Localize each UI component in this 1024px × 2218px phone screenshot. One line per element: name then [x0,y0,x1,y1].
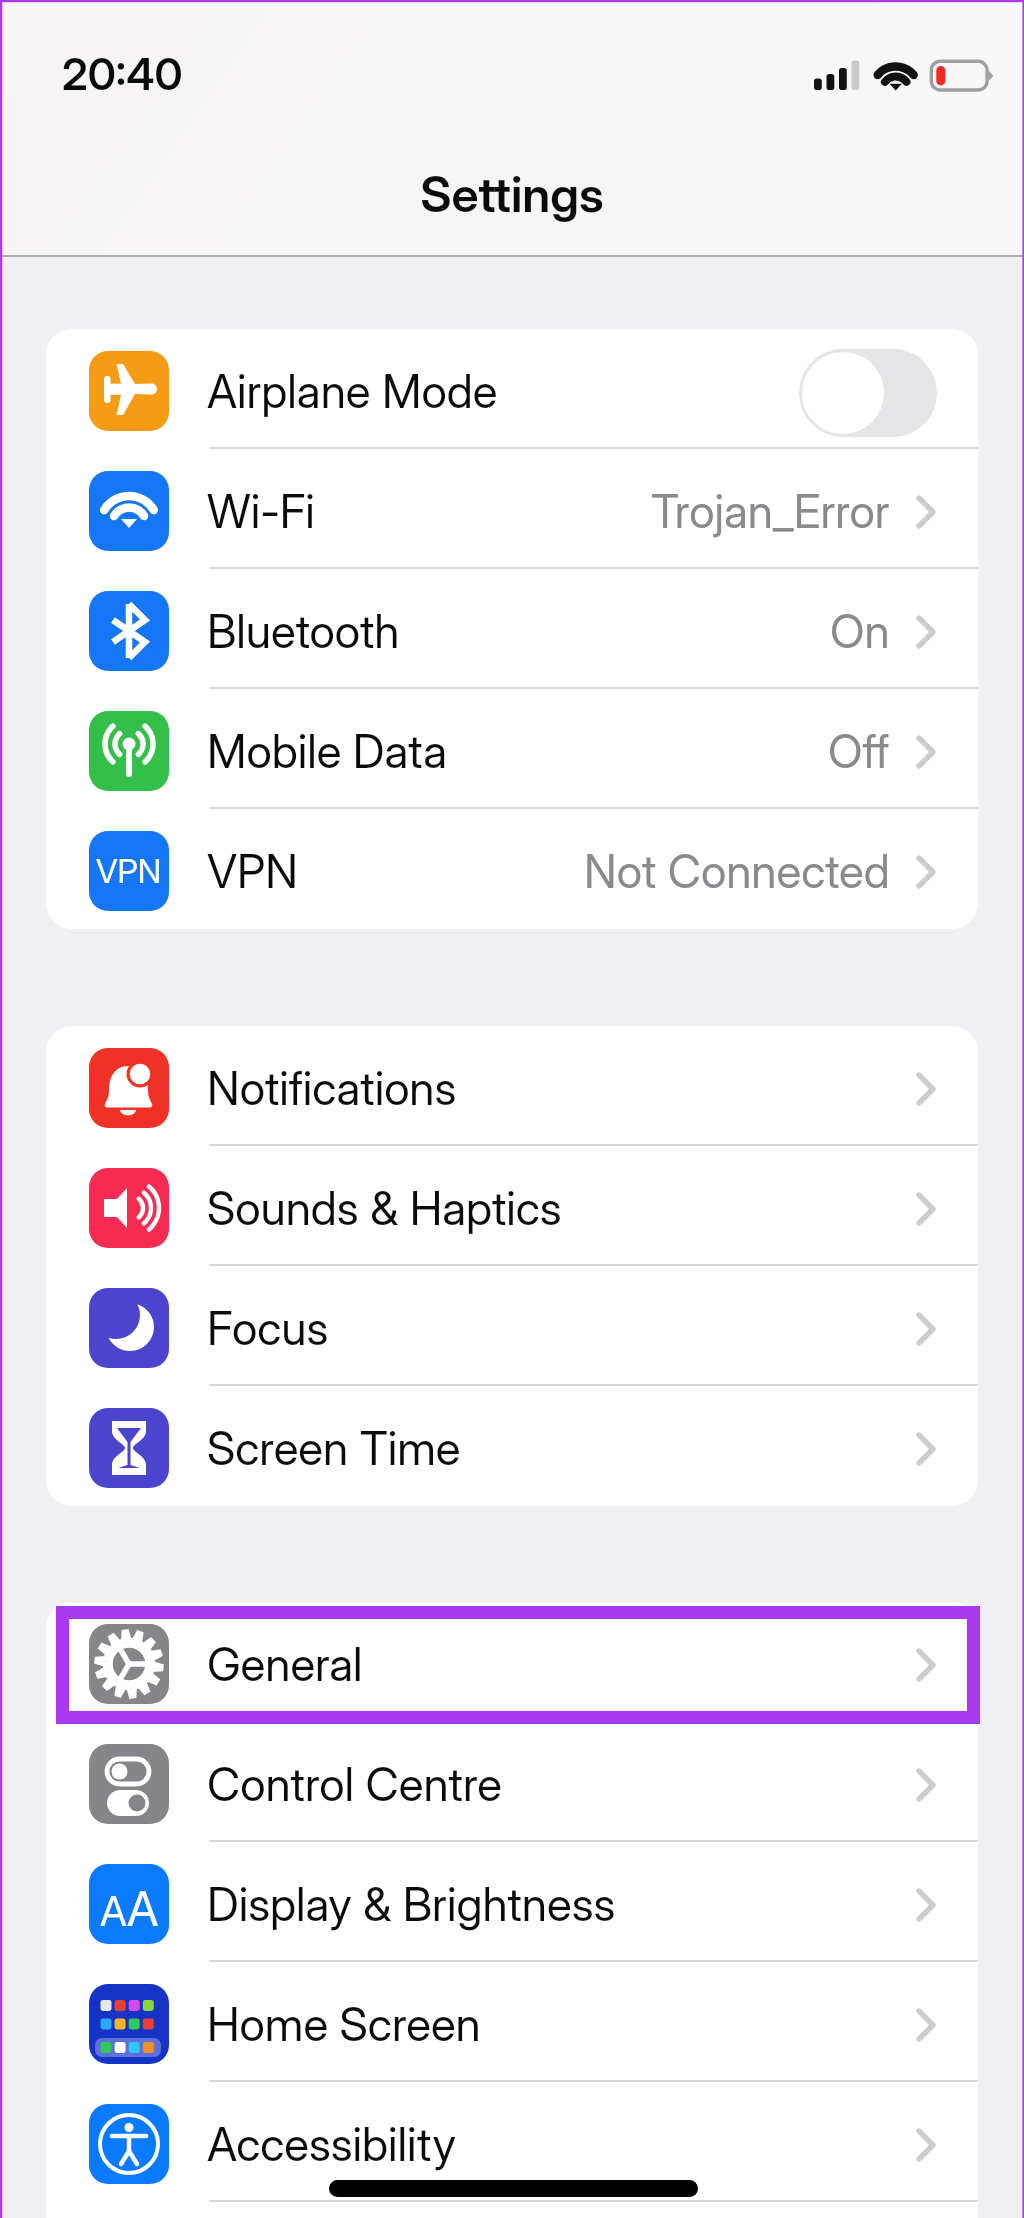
button[interactable]: Screen Time [46,1386,978,1506]
staticText: Accessibility [207,2116,457,2172]
staticText: Screen Time [207,1420,461,1476]
button[interactable]: Control Centre [46,1722,978,1842]
staticText: Sounds & Haptics [207,1180,562,1236]
button[interactable]: General [46,1602,978,1722]
staticText: Trojan_Error [651,483,890,539]
staticText: VPN [207,843,298,899]
button[interactable]: Mobile Data [46,689,978,809]
staticText: Airplane Mode [207,363,498,419]
staticText: VPN [96,851,162,891]
other: Highlighted General row [56,1606,980,1724]
button[interactable]: Notifications [46,1026,978,1146]
button[interactable]: Focus [46,1266,978,1386]
button[interactable]: VPN [46,809,978,929]
button[interactable]: Home Screen [46,1962,978,2082]
button[interactable]: Sounds & Haptics [46,1146,978,1266]
button[interactable]: Wi-Fi [46,449,978,569]
other: Signal, Wi-Fi and battery status [813,55,998,95]
staticText: General [207,1636,363,1692]
staticText: Display & Brightness [207,1876,616,1932]
staticText: A [100,1886,127,1936]
staticText: Focus [207,1300,329,1356]
staticText: Settings [0,165,1024,224]
button[interactable]: Airplane Mode toggle, off [799,349,937,437]
staticText: Off [828,723,890,779]
staticText: Mobile Data [207,723,448,779]
staticText: Not Connected [584,843,890,899]
button[interactable]: A [46,1842,978,1962]
button[interactable]: Bluetooth [46,569,978,689]
button[interactable]: Accessibility [46,2082,978,2202]
staticText: 20:40 [62,47,183,100]
staticText: Bluetooth [207,603,400,659]
staticText: On [830,603,890,659]
staticText: A [127,1879,159,1937]
staticText: Control Centre [207,1756,502,1812]
staticText: Notifications [207,1060,457,1116]
staticText: Wi-Fi [207,483,315,539]
staticText: Home Screen [207,1996,481,2052]
button[interactable]: Airplane Mode [46,329,978,449]
